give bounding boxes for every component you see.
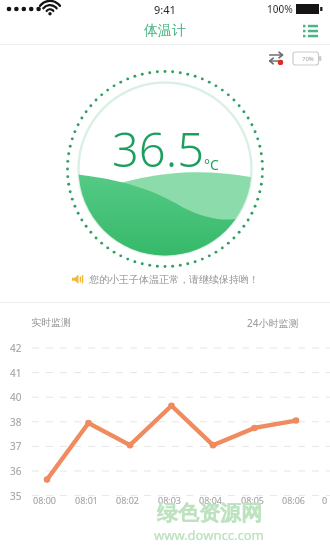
staticText: 08:06	[282, 494, 306, 506]
staticText: 08:00	[33, 494, 57, 506]
staticText: 24小时监测	[247, 316, 299, 330]
button[interactable]: 24小时监测	[244, 313, 302, 333]
staticText: 绿色资源网	[157, 500, 262, 526]
staticText: 08:03	[158, 494, 182, 506]
staticText: 41	[10, 366, 22, 380]
staticText: 08:05	[241, 494, 265, 506]
staticText: 36.5	[112, 117, 204, 181]
staticText: 38	[10, 415, 22, 429]
staticText: 08:04	[199, 494, 223, 506]
staticText: 36	[10, 464, 22, 478]
staticText: 42	[10, 341, 22, 355]
button[interactable]: 您的小王子体温正常，请继续保持哟！	[0, 273, 330, 286]
staticText: 08:01	[75, 494, 99, 506]
button[interactable]: 实时监测	[28, 313, 74, 332]
button[interactable]: Sync data	[266, 47, 288, 69]
staticText: www.downcc.com	[154, 526, 264, 544]
staticText: 37	[10, 439, 22, 453]
staticText: 40	[10, 390, 22, 404]
staticText: 100%	[267, 2, 293, 16]
staticText: 体温计	[144, 22, 186, 40]
staticText: °C	[204, 155, 219, 174]
button[interactable]: Menu	[297, 18, 323, 44]
staticText: 70%	[302, 55, 314, 63]
staticText: 您的小王子体温正常，请继续保持哟！	[89, 273, 259, 286]
staticText: 0	[322, 494, 328, 506]
staticText: 9:41	[154, 2, 176, 17]
staticText: 08:02	[116, 494, 140, 506]
staticText: 实时监测	[31, 316, 71, 329]
staticText: 35	[10, 489, 22, 503]
